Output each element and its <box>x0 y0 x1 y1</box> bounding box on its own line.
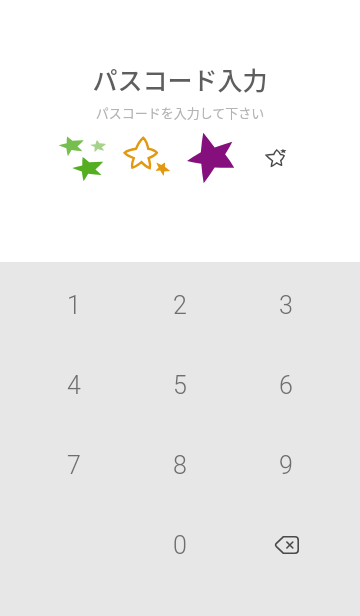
button[interactable]: 3 <box>233 265 339 345</box>
button[interactable]: 6 <box>233 345 339 425</box>
staticText: 1 <box>67 291 81 320</box>
button[interactable]: 1 <box>21 265 127 345</box>
button[interactable]: 4 <box>21 345 127 425</box>
staticText: 0 <box>173 531 187 560</box>
button[interactable]: 0 <box>127 505 233 585</box>
staticText: 5 <box>173 371 187 400</box>
staticText: 7 <box>67 451 81 480</box>
button[interactable]: 9 <box>233 425 339 505</box>
button[interactable]: 2 <box>127 265 233 345</box>
staticText: 6 <box>279 371 293 400</box>
button[interactable]: 8 <box>127 425 233 505</box>
staticText: 2 <box>173 291 187 320</box>
button[interactable]: 5 <box>127 345 233 425</box>
staticText: 4 <box>67 371 81 400</box>
staticText: 3 <box>279 291 293 320</box>
staticText: 8 <box>173 451 187 480</box>
button[interactable]: 7 <box>21 425 127 505</box>
button[interactable]: Delete <box>233 505 339 585</box>
other: Passcode progress: 4 of 5 entered <box>0 122 360 262</box>
staticText: 9 <box>279 451 293 480</box>
staticText: パスコードを入力して下さい <box>0 103 360 122</box>
staticText: パスコード入力 <box>0 61 360 97</box>
